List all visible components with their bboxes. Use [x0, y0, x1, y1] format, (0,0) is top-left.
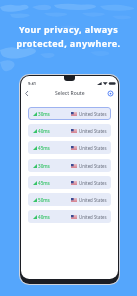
staticText: United States	[79, 197, 107, 203]
button[interactable]: Refresh	[106, 89, 115, 98]
staticText: 30ms	[38, 111, 50, 117]
button[interactable]: 45ms	[28, 141, 111, 154]
staticText: 9:41	[28, 81, 36, 86]
staticText: 40ms	[38, 128, 50, 134]
staticText: United States	[79, 128, 107, 134]
button[interactable]: 30ms	[28, 159, 111, 172]
staticText: United States	[79, 163, 107, 169]
button[interactable]: 45ms	[28, 176, 111, 189]
staticText: 40ms	[38, 214, 50, 220]
staticText: United States	[79, 111, 107, 117]
button[interactable]: 40ms	[28, 124, 111, 137]
staticText: 45ms	[38, 145, 50, 151]
button[interactable]: Back	[22, 89, 31, 98]
staticText: Select Route	[55, 90, 85, 97]
staticText: United States	[79, 180, 107, 186]
button[interactable]: 50ms	[28, 193, 111, 206]
button[interactable]: 30ms	[28, 107, 111, 120]
staticText: 50ms	[38, 197, 50, 203]
staticText: 45ms	[38, 180, 50, 186]
staticText: 30ms	[38, 163, 50, 169]
staticText: United States	[79, 214, 107, 220]
staticText: Your privacy, always protected, anywhere…	[14, 23, 123, 50]
button[interactable]: 40ms	[28, 210, 111, 223]
staticText: United States	[79, 145, 107, 151]
